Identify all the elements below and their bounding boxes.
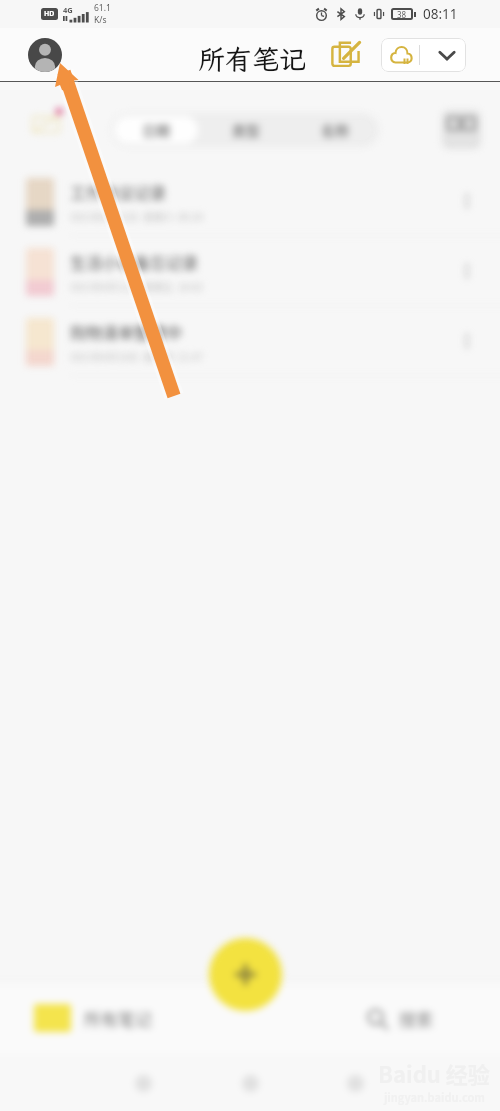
staticText: 日期 [142,120,170,140]
staticText: 2021年6月12日 星期六 09:24 [70,209,203,223]
staticText: K/s [94,14,107,26]
button[interactable]: 名称 [293,116,376,144]
staticText: 08:11 [423,5,458,23]
button[interactable]: 类型 [204,116,287,144]
button[interactable]: Recents [333,1061,377,1105]
button[interactable]: Grid view [442,110,481,149]
button[interactable]: 所有笔记 [34,1004,152,1032]
staticText: 4G [63,5,73,15]
staticText: 工作会议记录 [70,180,167,203]
button[interactable]: 生活小事备忘记录 [0,236,500,306]
button[interactable]: 购物清单整理中 [0,306,500,376]
staticText: HD [44,9,55,19]
button[interactable]: New note [209,938,282,1011]
button[interactable]: 搜索 [366,1006,433,1031]
staticText: Baidu 经验 [378,1057,490,1089]
staticText: 2021年6月11日 星期五 18:02 [70,279,203,293]
button[interactable]: Profile [28,38,62,72]
staticText: 2021年6月10日 星期四 21:47 [70,349,203,363]
staticText: 类型 [232,120,260,140]
button[interactable]: 工作会议记录 [0,166,500,236]
button[interactable]: 日期 [114,116,198,144]
staticText: 61.1 [94,2,111,14]
button[interactable]: Mail [24,101,64,141]
staticText: 搜索 [399,1006,433,1031]
button[interactable]: Cloud sync [381,38,466,72]
button[interactable]: Back [121,1061,165,1105]
button[interactable]: New note [330,38,364,72]
staticText: 生活小事备忘记录 [70,250,199,273]
staticText: 38 [397,9,407,20]
staticText: 所有笔记 [198,41,306,77]
staticText: 所有笔记 [84,1006,152,1031]
staticText: 购物清单整理中 [70,320,183,343]
staticText: 名称 [321,120,349,140]
button[interactable]: Home [228,1061,272,1105]
